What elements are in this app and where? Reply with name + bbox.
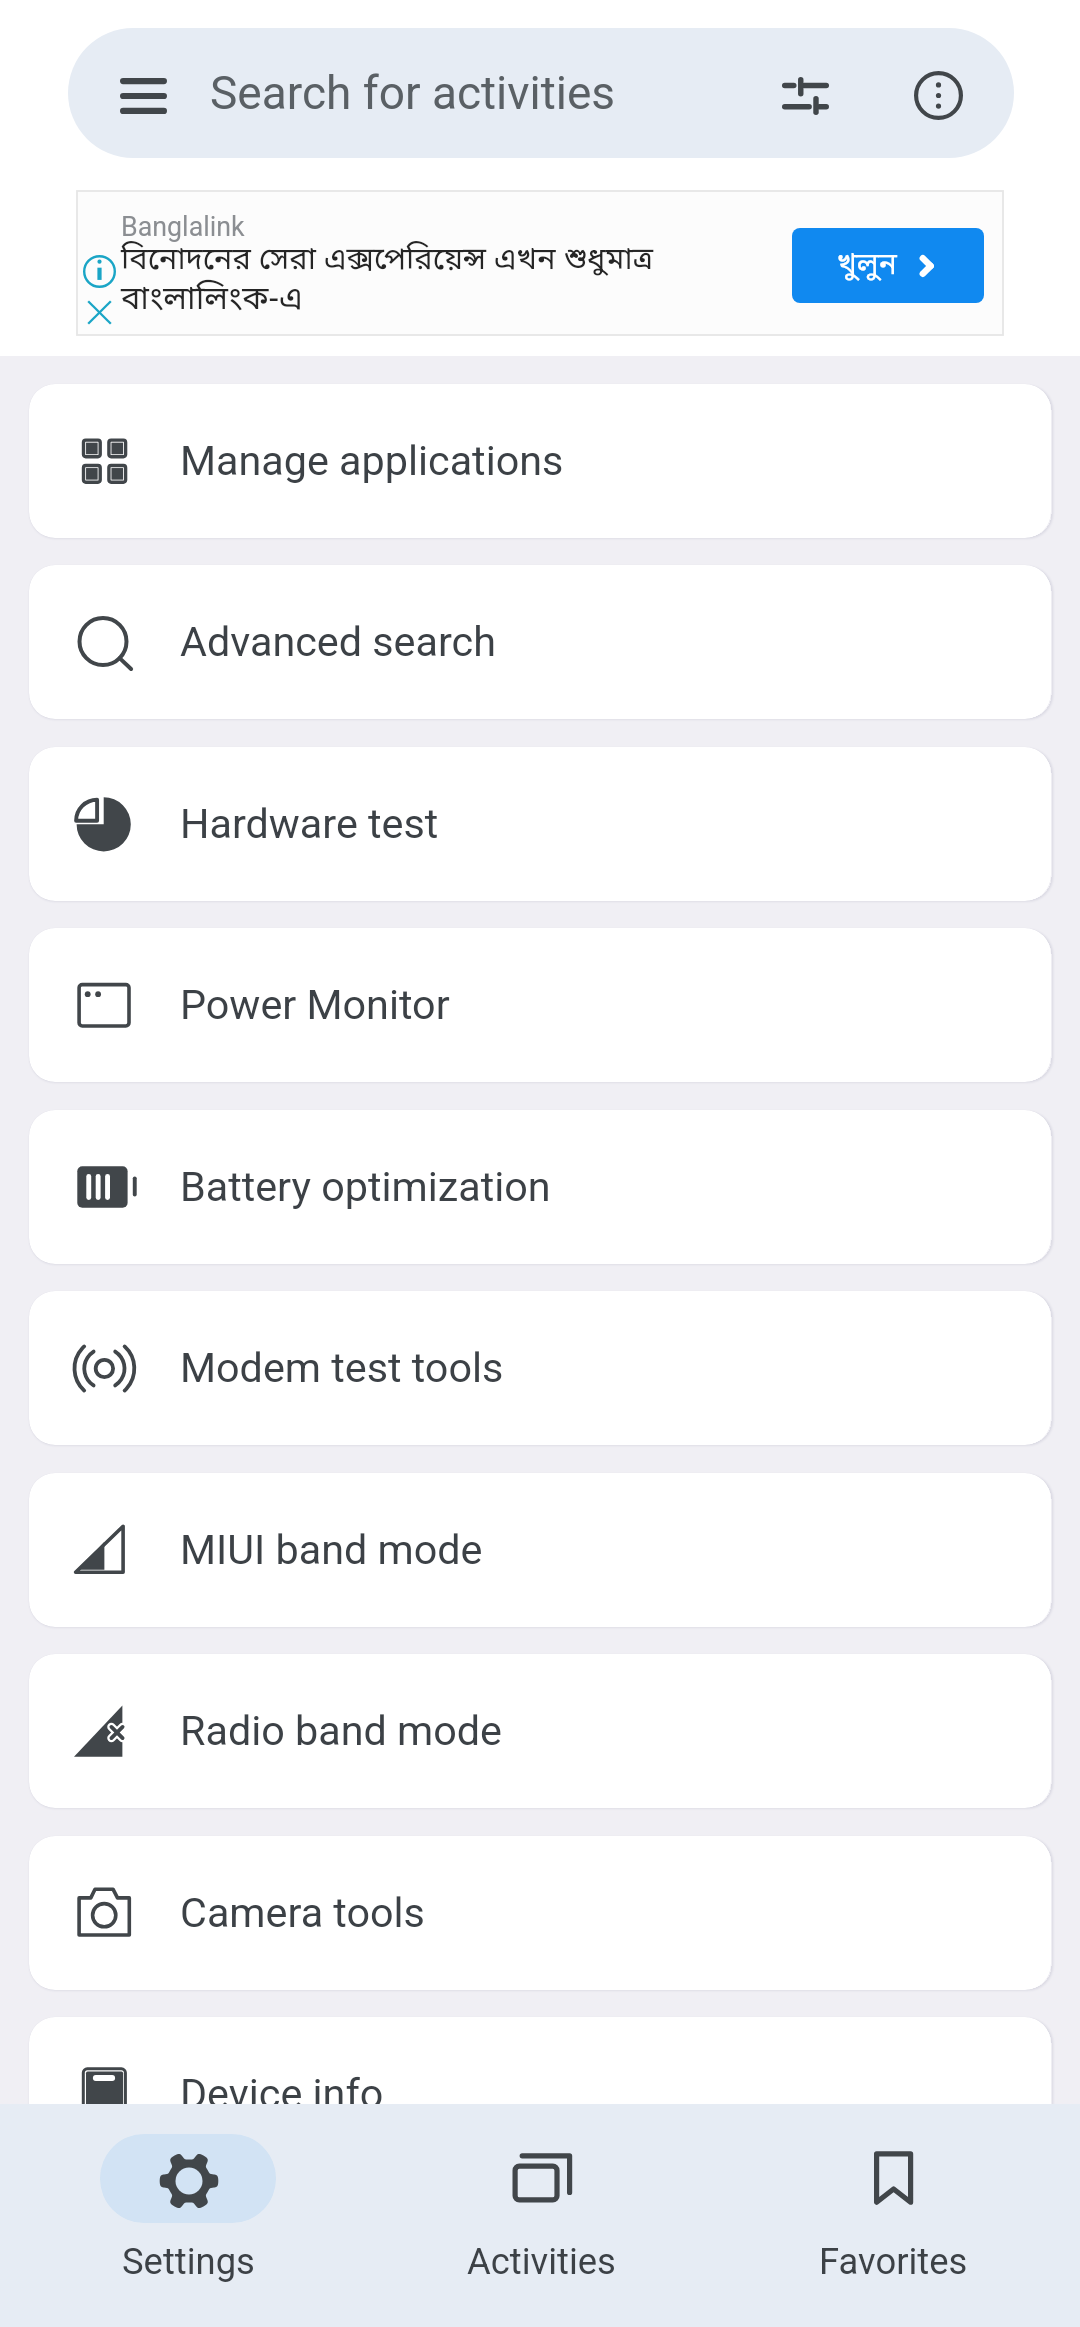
staticText: Banglalink [121,211,245,242]
button[interactable]: Camera tools [29,1836,1051,1990]
button[interactable]: Hardware test [29,747,1051,901]
staticText: Settings [122,2240,255,2283]
button[interactable]: Advanced search [29,565,1051,719]
staticText: বিনোদনের সেরা এক্সপেরিয়েন্স এখন শুধুমাত… [121,241,654,282]
button[interactable]: Activities [453,2116,629,2316]
button[interactable]: Menu [68,28,1014,158]
button[interactable]: Favorites [805,2116,981,2316]
button[interactable]: Device info [29,2017,1051,2171]
staticText: Activities [467,2240,616,2283]
staticText: Advanced search [180,618,496,666]
button[interactable]: Settings [100,2116,276,2316]
button[interactable]: More options [886,41,990,145]
staticText: Camera tools [180,1889,425,1937]
button[interactable]: Battery optimization [29,1110,1051,1264]
button[interactable]: Manage applications [29,384,1051,538]
button[interactable]: খুলুন [792,228,984,303]
button[interactable]: MIUI band mode [29,1473,1051,1627]
staticText: Modem test tools [180,1344,504,1392]
staticText: Power Monitor [180,981,450,1029]
button[interactable]: Radio band mode [29,1654,1051,1808]
other: Ad info [83,255,116,288]
staticText: Favorites [819,2240,968,2283]
staticText: Hardware test [180,800,439,848]
staticText: বাংলালিংক-এ [121,279,303,322]
staticText: Radio band mode [180,1707,502,1755]
button[interactable]: Power Monitor [29,928,1051,1082]
staticText: Search for activities [210,66,616,120]
other: Menu [120,78,167,114]
staticText: খুলুন [837,246,897,286]
button[interactable]: Filter [753,41,857,145]
other: Close ad [87,300,112,325]
staticText: Battery optimization [180,1163,551,1211]
staticText: MIUI band mode [180,1526,483,1574]
staticText: Device info [180,2070,384,2118]
button[interactable]: Modem test tools [29,1291,1051,1445]
staticText: Manage applications [180,437,564,485]
